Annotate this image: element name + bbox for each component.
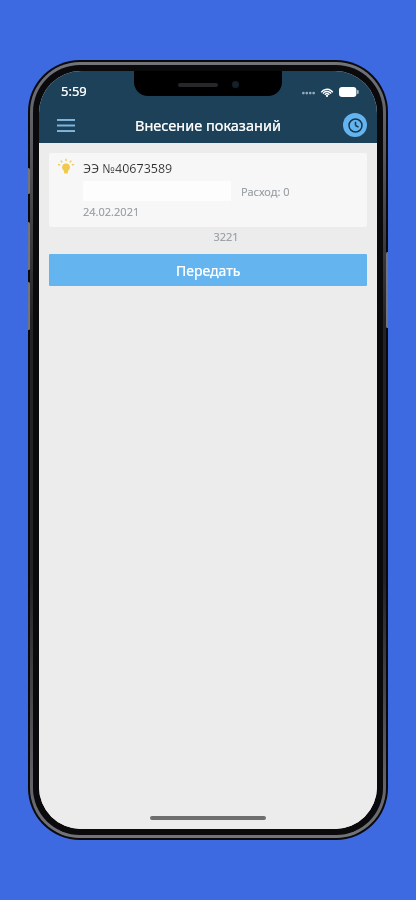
- staticText: 5:59: [61, 82, 87, 100]
- staticText: 24.02.2021: [83, 204, 140, 219]
- staticText: 3221: [85, 229, 367, 244]
- button[interactable]: History: [343, 113, 367, 137]
- staticText: Расход: 0: [241, 184, 290, 199]
- staticText: Передать: [176, 261, 241, 280]
- button[interactable]: Передать: [49, 254, 367, 286]
- button[interactable]: Menu: [49, 108, 83, 142]
- staticText: Внесение показаний: [135, 115, 281, 135]
- staticText: ЭЭ №40673589: [83, 160, 173, 177]
- button[interactable]: ЭЭ №40673589: [49, 153, 367, 227]
